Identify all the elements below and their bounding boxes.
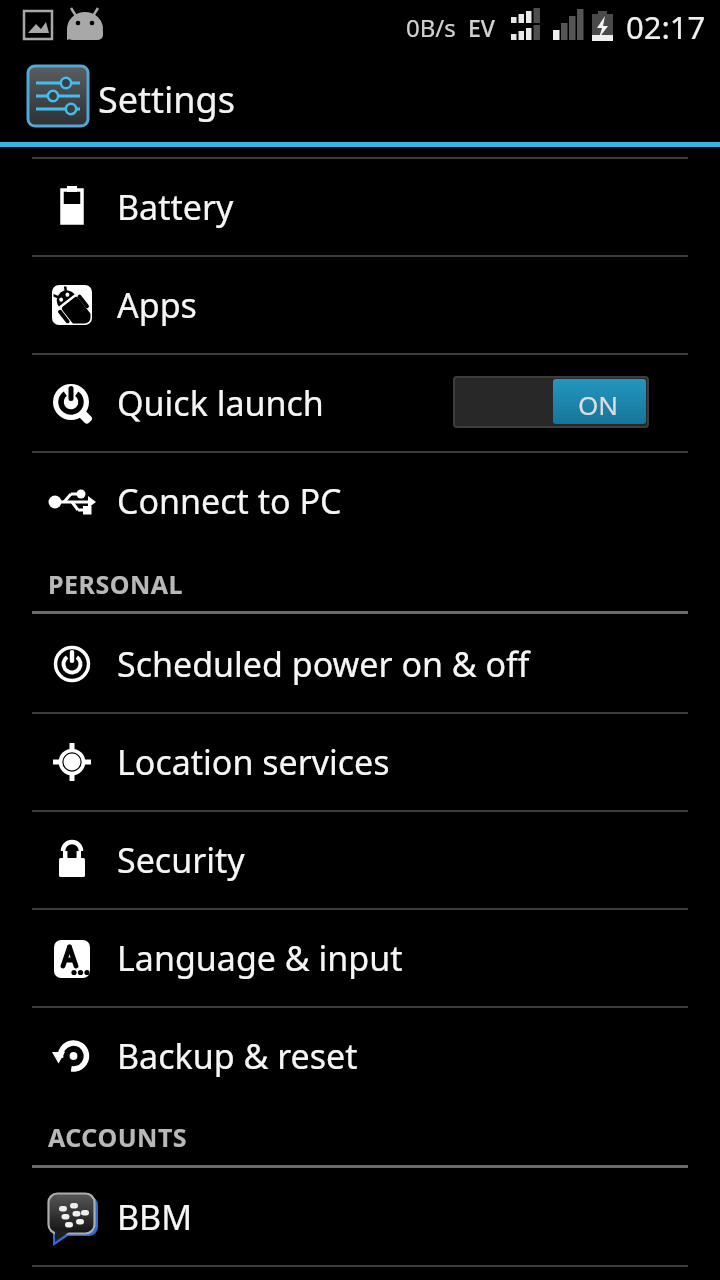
button[interactable]: Battery — [0, 158, 720, 255]
button[interactable]: Backup & reset — [0, 1007, 720, 1104]
button[interactable]: Scheduled power on & off — [0, 615, 720, 712]
staticText: Security — [117, 837, 245, 883]
staticText: Backup & reset — [117, 1033, 358, 1079]
staticText: Settings — [98, 75, 235, 124]
staticText: Quick launch — [117, 380, 324, 426]
staticText: ON — [578, 387, 619, 422]
button[interactable]: ON — [454, 377, 648, 427]
staticText: Apps — [117, 282, 197, 328]
button[interactable]: BBM — [0, 1168, 720, 1265]
button[interactable]: Apps — [0, 256, 720, 353]
staticText: PERSONAL — [48, 567, 184, 601]
staticText: EV — [468, 12, 495, 43]
button[interactable]: Settings — [0, 48, 720, 142]
button[interactable]: Quick launch — [0, 354, 720, 451]
staticText: Battery — [117, 184, 234, 230]
staticText: BBM — [117, 1194, 193, 1240]
staticText: ACCOUNTS — [48, 1120, 188, 1154]
button[interactable]: Location services — [0, 713, 720, 810]
staticText: Location services — [117, 739, 390, 785]
staticText: Connect to PC — [117, 478, 342, 524]
staticText: 0B/s — [406, 11, 456, 44]
button[interactable]: Connect to PC — [0, 452, 720, 549]
staticText: Language & input — [117, 935, 403, 981]
button[interactable]: Security — [0, 811, 720, 908]
button[interactable]: Language & input — [0, 909, 720, 1006]
staticText: 02:17 — [626, 6, 706, 48]
staticText: Scheduled power on & off — [117, 641, 530, 687]
